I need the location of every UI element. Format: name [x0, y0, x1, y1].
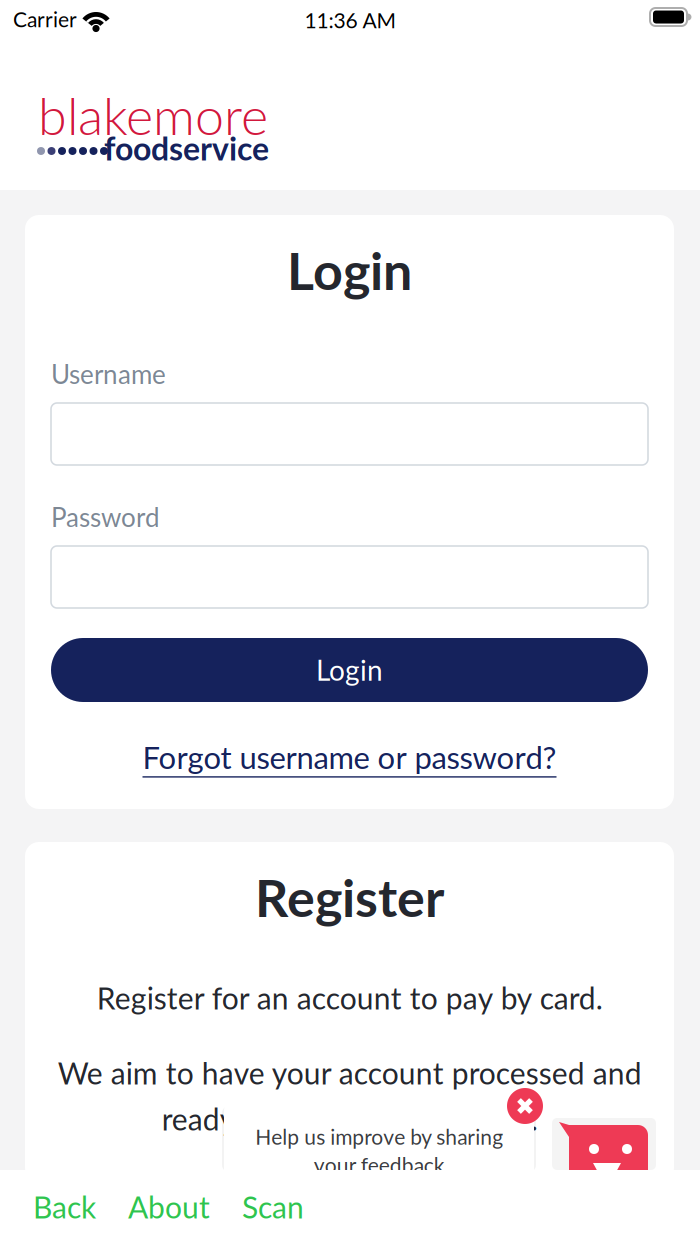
button[interactable]: Close feedback prompt [507, 1088, 543, 1124]
staticText: Back [33, 1189, 96, 1225]
staticText: Register [255, 866, 444, 928]
staticText: About [128, 1189, 210, 1225]
button[interactable]: Forgot username or password? [51, 733, 648, 781]
staticText: Carrier [13, 6, 77, 32]
staticText: Login [316, 653, 383, 687]
staticText: Username [51, 358, 166, 390]
staticText: Help us improve by sharing your feedback [255, 1124, 503, 1177]
button[interactable]: Scan [226, 1171, 320, 1243]
staticText: Register for an account to pay by card. [96, 980, 602, 1016]
staticText: Scan [242, 1189, 304, 1225]
staticText: Password [51, 501, 160, 533]
staticText: We aim to have your account processed an… [57, 1055, 641, 1137]
staticText: blakemore [38, 84, 268, 146]
button[interactable]: Back [17, 1171, 112, 1243]
staticText: Login [287, 239, 412, 301]
button[interactable]: Help us improve by sharing your feedback [224, 1104, 534, 1184]
staticText: Forgot username or password? [142, 738, 556, 776]
button[interactable]: Login [51, 638, 648, 702]
staticText: foodservice [104, 129, 269, 167]
staticText: 11:36 AM [304, 7, 395, 33]
button[interactable]: About [112, 1171, 226, 1243]
